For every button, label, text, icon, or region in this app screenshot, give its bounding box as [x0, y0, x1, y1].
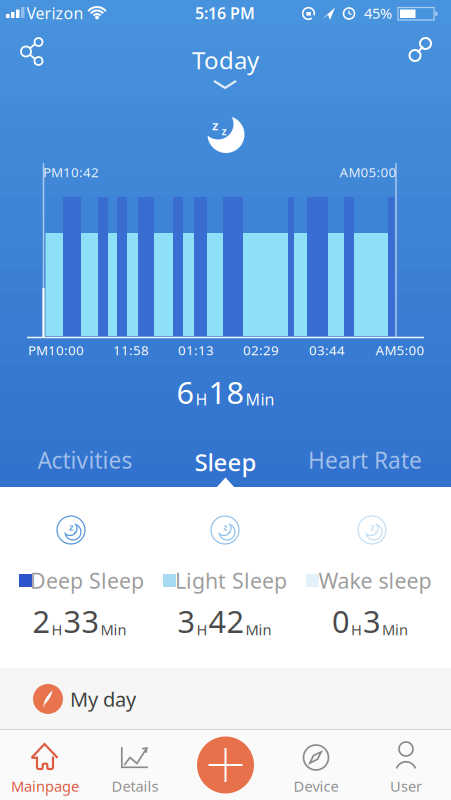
staticText: Min: [245, 620, 271, 639]
staticText: H: [351, 620, 362, 639]
staticText: Min: [382, 620, 408, 639]
staticText: Mainpage: [11, 776, 79, 796]
button[interactable]: Today: [165, 43, 285, 91]
staticText: Min: [100, 620, 126, 639]
staticText: z: [223, 521, 228, 533]
staticText: Wake sleep: [318, 566, 431, 595]
staticText: Activities: [37, 445, 132, 475]
button[interactable]: Device: [271, 730, 361, 800]
staticText: 3: [363, 601, 381, 641]
button[interactable]: Sleep: [170, 442, 280, 482]
staticText: 42: [208, 601, 244, 641]
button[interactable]: Heart Rate: [300, 440, 430, 480]
staticText: 02:29: [243, 341, 279, 359]
staticText: AM05:00: [339, 163, 396, 181]
staticText: Details: [111, 776, 158, 796]
staticText: Verizon: [26, 2, 83, 24]
staticText: 0: [332, 601, 350, 641]
staticText: Min: [245, 389, 274, 410]
button[interactable]: Activities: [20, 440, 150, 480]
staticText: H: [196, 620, 207, 639]
button[interactable]: Details: [90, 730, 180, 800]
staticText: Deep Sleep: [30, 566, 144, 595]
staticText: z: [212, 116, 218, 134]
staticText: 33: [63, 601, 99, 641]
staticText: z: [370, 521, 375, 533]
staticText: 03:44: [309, 341, 345, 359]
staticText: AM5:00: [375, 341, 424, 359]
staticText: z: [69, 521, 74, 533]
staticText: Sleep: [194, 446, 256, 478]
staticText: 45%: [364, 3, 392, 23]
staticText: 3: [177, 601, 195, 641]
staticText: 6: [176, 372, 194, 412]
button[interactable]: My day: [0, 668, 451, 729]
staticText: z: [221, 124, 226, 138]
staticText: PM10:42: [43, 163, 99, 181]
staticText: Heart Rate: [308, 445, 422, 475]
staticText: 5:16 PM: [195, 2, 255, 24]
staticText: 11:58: [113, 341, 149, 359]
staticText: My day: [70, 686, 136, 712]
button[interactable]: [196, 736, 254, 794]
button[interactable]: [398, 28, 442, 72]
button[interactable]: [8, 30, 52, 74]
button[interactable]: User: [361, 730, 451, 800]
button[interactable]: Mainpage: [0, 730, 90, 800]
staticText: Today: [192, 44, 259, 76]
staticText: Device: [293, 776, 338, 796]
staticText: H: [51, 620, 62, 639]
staticText: 01:13: [178, 341, 214, 359]
staticText: 2: [32, 601, 50, 641]
staticText: Light Sleep: [175, 566, 287, 595]
staticText: PM10:00: [28, 341, 84, 359]
staticText: H: [195, 389, 207, 410]
staticText: 18: [208, 372, 244, 412]
staticText: User: [390, 776, 422, 796]
